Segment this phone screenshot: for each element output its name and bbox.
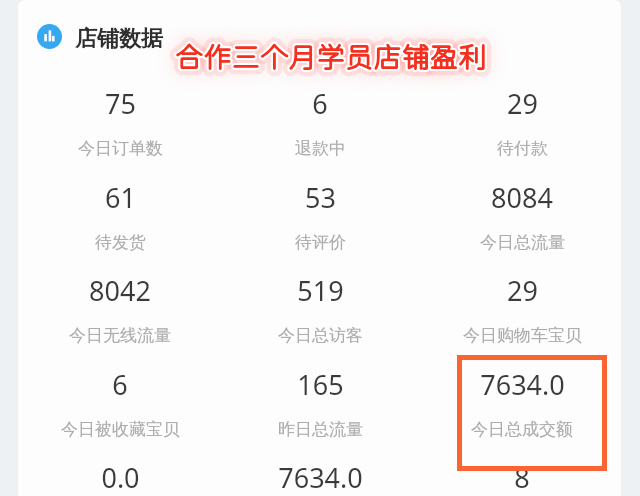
button[interactable]: 7634.0 [220, 459, 420, 493]
button[interactable]: 7634.0 [422, 366, 622, 400]
button[interactable]: 8084 [422, 179, 622, 213]
staticText: 0.0 [101, 459, 140, 493]
staticText: 7634.0 [480, 366, 565, 400]
staticText: 店铺数据 [75, 25, 163, 53]
staticText: 今日总成交额 [471, 419, 573, 440]
staticText: 8084 [491, 179, 553, 213]
staticText: 75 [105, 85, 136, 119]
staticText: 今日无线流量 [69, 325, 171, 346]
staticText: 29 [507, 272, 538, 306]
staticText: 8042 [89, 272, 151, 306]
staticText: 今日总访客 [278, 325, 363, 346]
staticText: 今日订单数 [78, 138, 163, 159]
staticText: 昨日总流量 [278, 419, 363, 440]
button[interactable]: 6 [220, 85, 420, 119]
button[interactable]: 53 [220, 179, 420, 213]
staticText: 165 [297, 366, 344, 400]
staticText: 退款中 [295, 138, 346, 159]
staticText: 29 [507, 85, 538, 119]
staticText: 6 [112, 366, 128, 400]
staticText: 合作三个月学员店铺盈利 [176, 41, 488, 73]
button[interactable]: 0.0 [20, 459, 220, 493]
button[interactable]: 165 [220, 366, 420, 400]
staticText: 61 [105, 179, 136, 213]
button[interactable]: 6 [20, 366, 220, 400]
staticText: 待评价 [295, 232, 346, 253]
staticText: 合作三个月学员店铺盈利 [176, 41, 488, 73]
staticText: 今日被收藏宝贝 [61, 419, 180, 440]
button[interactable]: 8042 [20, 272, 220, 306]
button[interactable]: Shop data chart [37, 24, 163, 52]
button[interactable]: 61 [20, 179, 220, 213]
button[interactable]: 519 [220, 272, 420, 306]
button[interactable]: 8 [422, 459, 622, 493]
staticText: 6 [312, 85, 328, 119]
staticText: 待发货 [95, 232, 146, 253]
staticText: 今日总流量 [480, 232, 565, 253]
staticText: 53 [305, 179, 336, 213]
other: Shop data chart [37, 24, 62, 49]
staticText: 待付款 [497, 138, 548, 159]
staticText: 今日购物车宝贝 [463, 325, 582, 346]
staticText: 合作三个月学员店铺盈利 [176, 41, 488, 73]
button[interactable]: 75 [20, 85, 220, 119]
staticText: 合作三个月学员店铺盈利 [176, 41, 488, 73]
staticText: 8 [514, 459, 530, 493]
staticText: 519 [297, 272, 344, 306]
staticText: 7634.0 [278, 459, 363, 493]
button[interactable]: 29 [422, 272, 622, 306]
button[interactable]: 29 [422, 85, 622, 119]
